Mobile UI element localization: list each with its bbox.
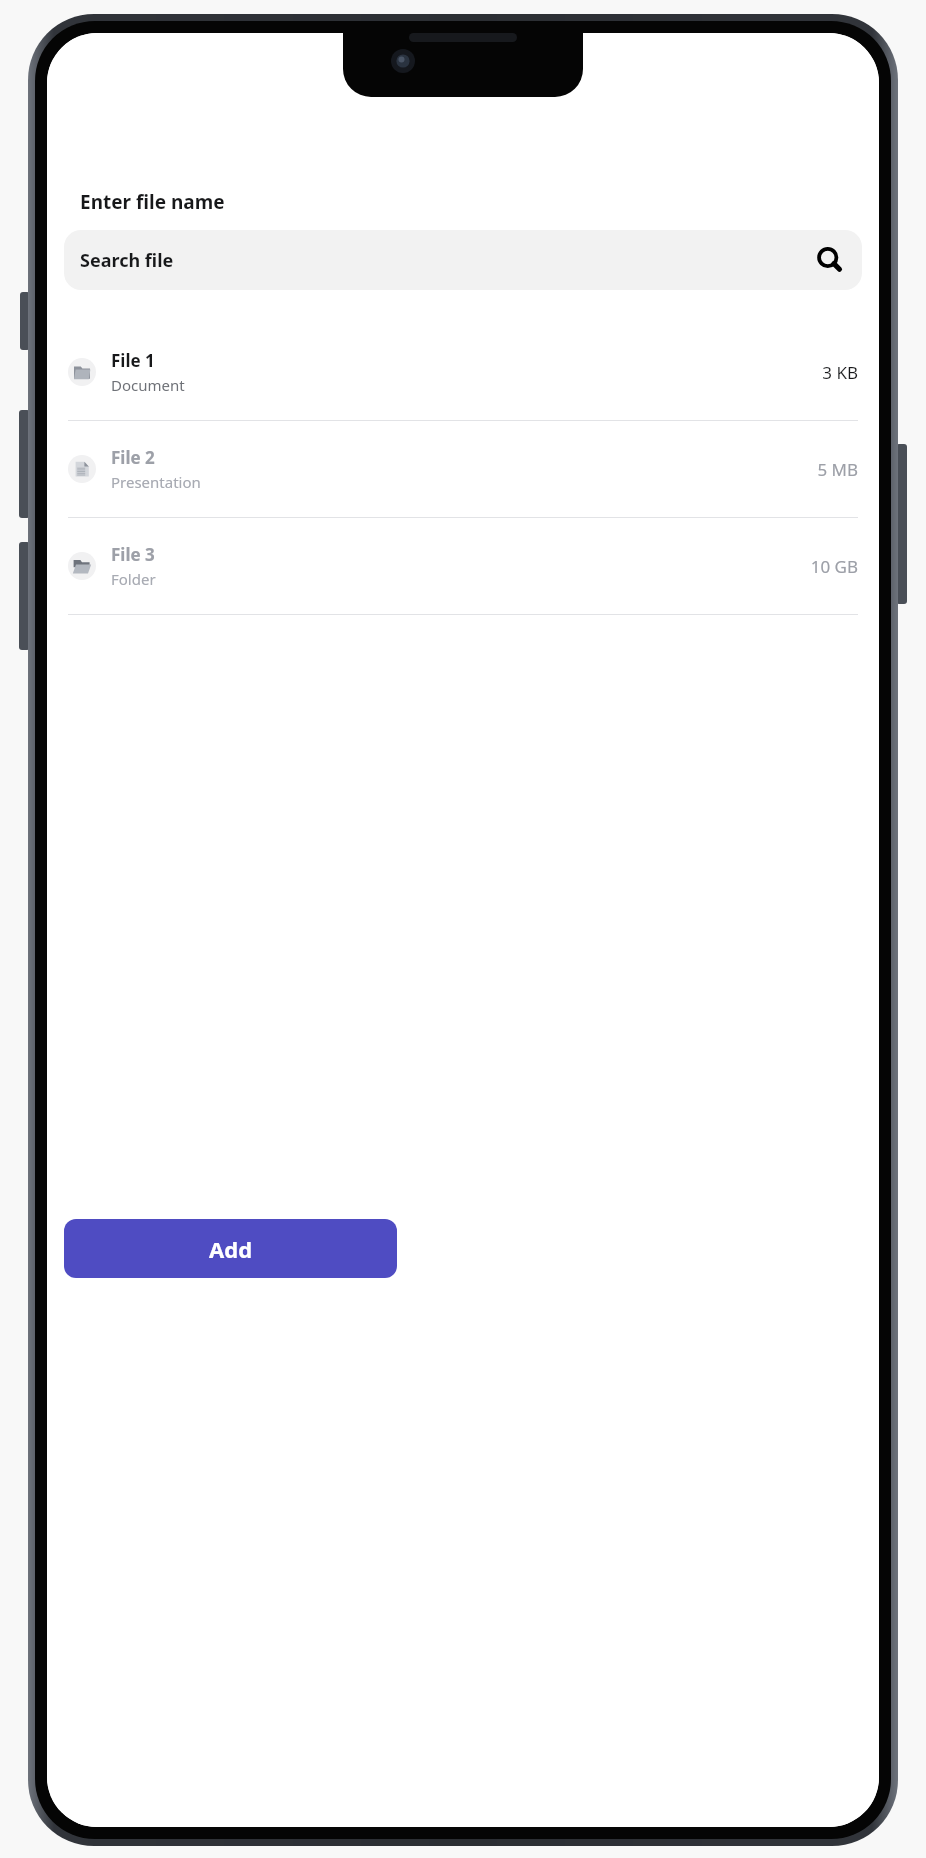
- staticText: Document: [111, 375, 185, 395]
- staticText: Search file: [80, 248, 174, 273]
- staticText: File 2: [111, 446, 155, 469]
- button[interactable]: File 1: [47, 324, 879, 421]
- staticText: Enter file name: [80, 189, 225, 215]
- staticText: Presentation: [111, 472, 201, 492]
- button[interactable]: File 2: [47, 421, 879, 518]
- staticText: File 3: [111, 543, 155, 566]
- staticText: Folder: [111, 569, 156, 589]
- button[interactable]: Search file: [64, 230, 862, 290]
- button[interactable]: Add: [64, 1219, 397, 1278]
- staticText: Add: [209, 1234, 253, 1264]
- staticText: 3 KB: [822, 361, 858, 384]
- other: Search: [814, 244, 846, 276]
- staticText: File 1: [111, 349, 155, 372]
- staticText: 10 GB: [810, 555, 858, 578]
- staticText: 5 MB: [817, 458, 858, 481]
- button[interactable]: File 3: [47, 518, 879, 615]
